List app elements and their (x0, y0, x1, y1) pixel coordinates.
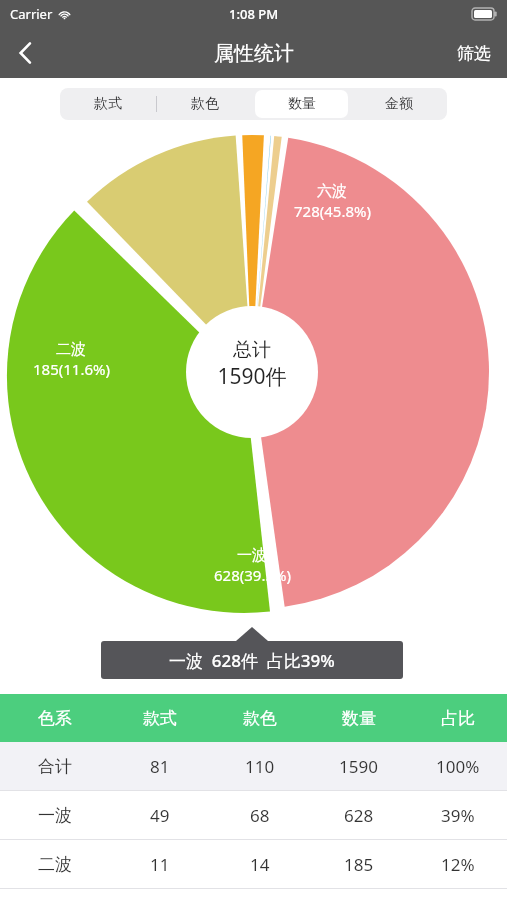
button[interactable]: 款式 (62, 90, 154, 118)
staticText: 68 (250, 804, 270, 827)
staticText: 二波 (38, 854, 72, 875)
staticText: 一波 628件 占比39% (169, 649, 335, 672)
staticText: 数量 (342, 708, 376, 729)
button[interactable]: 筛选 (441, 28, 507, 78)
staticText: 款式 (94, 95, 122, 113)
staticText: 款色 (191, 95, 219, 113)
staticText: 110 (245, 755, 275, 778)
staticText: 628(39.5%) (214, 565, 291, 585)
button[interactable]: 金额 (352, 90, 445, 118)
staticText: 合计 (38, 756, 72, 777)
staticText: Carrier (10, 5, 53, 23)
staticText: 185(11.6%) (33, 359, 110, 379)
staticText: 81 (150, 755, 170, 778)
staticText: 12% (441, 853, 475, 876)
staticText: 二波 (56, 340, 86, 359)
button[interactable]: 数量 (255, 90, 348, 118)
staticText: 色系 (38, 708, 72, 729)
button[interactable]: Back (0, 28, 52, 78)
staticText: 39% (441, 804, 475, 827)
staticText: 数量 (288, 95, 316, 113)
button[interactable]: 款色 (158, 90, 251, 118)
staticText: 六波 (317, 182, 347, 201)
staticText: 1:08 PM (229, 5, 279, 23)
staticText: 728(45.8%) (294, 201, 371, 221)
staticText: 185 (344, 853, 374, 876)
staticText: 金额 (385, 95, 413, 113)
staticText: 筛选 (457, 43, 491, 64)
staticText: 100% (436, 755, 480, 778)
staticText: 14 (250, 853, 270, 876)
staticText: 一波 (38, 805, 72, 826)
button[interactable]: 合计 (0, 742, 507, 790)
staticText: 1590 (339, 755, 378, 778)
staticText: 占比 (441, 708, 475, 729)
staticText: 总计 (233, 338, 271, 362)
button[interactable]: 二波 (0, 840, 507, 888)
staticText: 款式 (143, 708, 177, 729)
staticText: 628 (344, 804, 374, 827)
staticText: 属性统计 (214, 41, 294, 66)
staticText: 49 (150, 804, 170, 827)
staticText: 一波 (237, 546, 267, 565)
staticText: 1590件 (217, 362, 287, 391)
staticText: 款色 (243, 708, 277, 729)
button[interactable]: 一波 (0, 791, 507, 839)
staticText: 11 (150, 853, 170, 876)
